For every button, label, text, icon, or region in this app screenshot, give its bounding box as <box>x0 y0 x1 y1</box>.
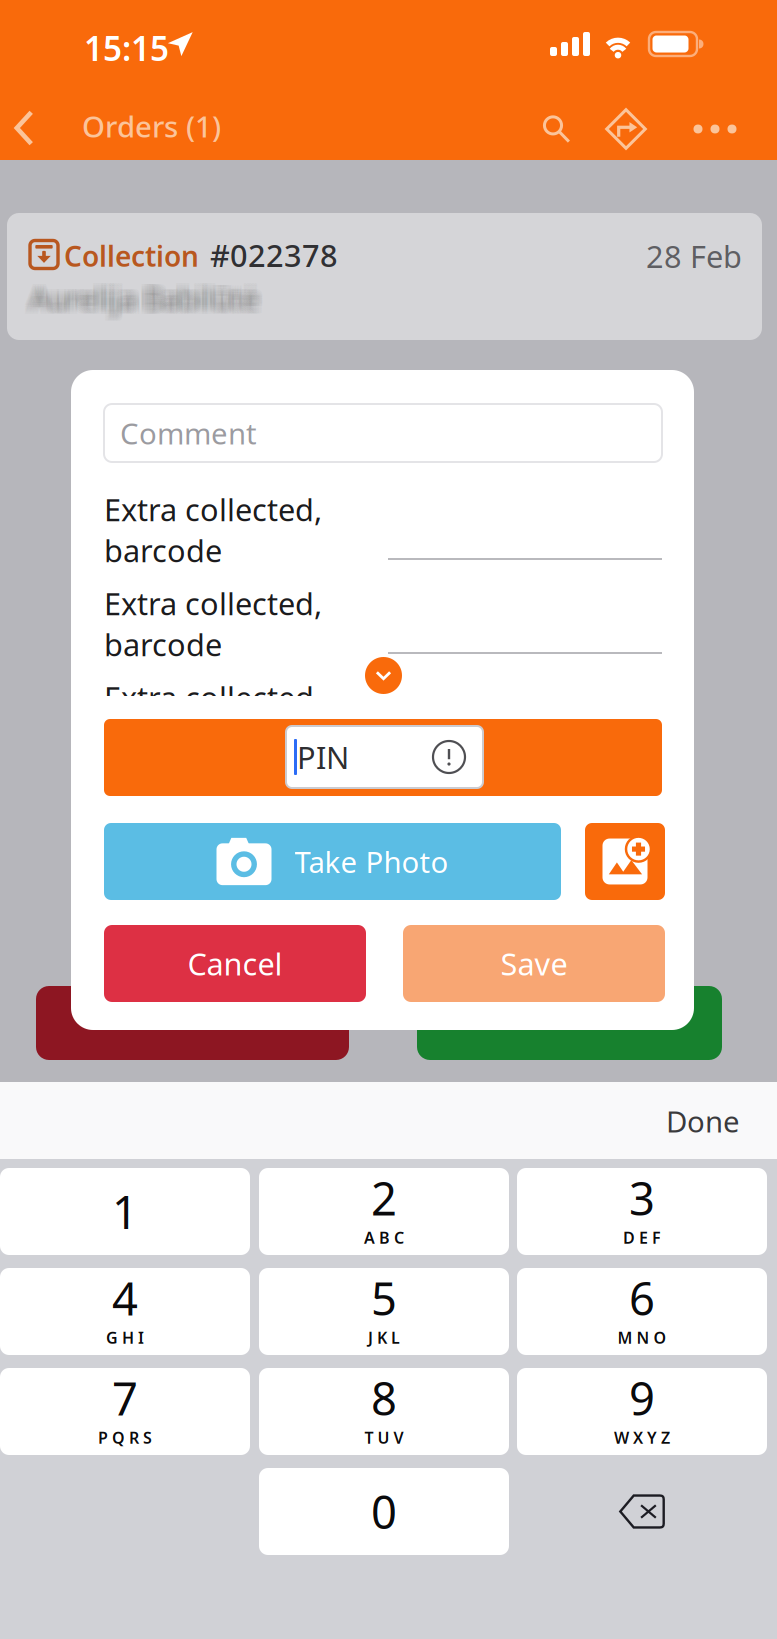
staticText: G H I <box>106 1327 144 1348</box>
staticText: Aurelija Babilūtė <box>30 278 259 317</box>
button[interactable]: More options <box>684 100 746 158</box>
staticText: M N O <box>617 1327 666 1348</box>
staticText: 4 <box>112 1268 138 1328</box>
staticText: Take Photo <box>294 842 448 881</box>
button[interactable]: Take Photo <box>104 823 561 900</box>
button[interactable]: Add photo from library <box>585 823 665 900</box>
staticText: Aurelija Babilūtė <box>35 281 264 320</box>
staticText: Aurelija Babilūtė <box>30 274 259 313</box>
button[interactable]: Cancel <box>104 925 366 1002</box>
staticText: Aurelija Babilūtė <box>27 274 256 313</box>
button[interactable]: Search <box>528 100 584 158</box>
staticText: Aurelija Babilūtė <box>25 278 254 317</box>
staticText: Extra collected, <box>104 489 322 530</box>
staticText: 9 <box>629 1368 655 1428</box>
staticText: Aurelija Babilūtė <box>25 274 254 313</box>
staticText: Aurelija Babilūtė <box>35 278 264 317</box>
staticText: Comment <box>120 413 257 452</box>
staticText: PIN <box>297 737 349 777</box>
staticText: barcode <box>104 624 222 665</box>
staticText: Aurelija Babilūtė <box>35 283 264 322</box>
staticText: 8 <box>371 1368 397 1428</box>
staticText: Aurelija Babilūtė <box>27 276 256 315</box>
staticText: Aurelija Babilūtė <box>33 274 262 313</box>
staticText: Aurelija Babilūtė <box>25 281 254 320</box>
staticText: J K L <box>368 1327 400 1348</box>
staticText: Aurelija Babilūtė <box>25 276 254 315</box>
staticText: Aurelija Babilūtė <box>27 283 256 322</box>
staticText: Aurelija Babilūtė <box>33 281 262 320</box>
staticText: 3 <box>629 1168 655 1228</box>
staticText: Aurelija Babilūtė <box>33 283 262 322</box>
button[interactable]: 4 <box>0 1268 250 1355</box>
button[interactable]: 7 <box>0 1368 250 1455</box>
staticText: Cancel <box>187 943 282 984</box>
staticText: Aurelija Babilūtė <box>30 276 259 315</box>
button[interactable]: 9 <box>517 1368 767 1455</box>
button[interactable]: 2 <box>259 1168 509 1255</box>
staticText: Aurelija Babilūtė <box>35 276 264 315</box>
staticText: Aurelija Babilūtė <box>35 274 264 313</box>
staticText: #022378 <box>210 235 338 275</box>
staticText: W X Y Z <box>614 1427 670 1448</box>
staticText: T U V <box>364 1427 403 1448</box>
staticText: P Q R S <box>98 1427 152 1448</box>
staticText: Aurelija Babilūtė <box>33 278 262 317</box>
staticText: Extra collected, <box>104 583 322 624</box>
staticText: Aurelija Babilūtė <box>27 278 256 317</box>
staticText: 7 <box>112 1368 138 1428</box>
staticText: 6 <box>629 1268 655 1328</box>
staticText: A B C <box>364 1227 404 1248</box>
button[interactable]: Navigate <box>597 100 655 158</box>
staticText: 15:15 <box>84 26 169 70</box>
staticText: Aurelija Babilūtė <box>25 283 254 322</box>
staticText: 0 <box>371 1481 397 1542</box>
staticText: 2 <box>371 1168 397 1228</box>
button[interactable]: 8 <box>259 1368 509 1455</box>
staticText: Aurelija Babilūtė <box>30 281 259 320</box>
button[interactable]: 5 <box>259 1268 509 1355</box>
staticText: Save <box>500 943 567 984</box>
button[interactable]: Back <box>0 100 48 156</box>
staticText: Collection <box>64 237 199 275</box>
button[interactable]: 1 <box>0 1168 250 1255</box>
staticText: Done <box>666 1101 740 1140</box>
button[interactable]: Save <box>403 925 665 1002</box>
button[interactable]: Delete <box>517 1468 767 1555</box>
staticText: Orders (1) <box>82 106 221 145</box>
button[interactable]: 3 <box>517 1168 767 1255</box>
button[interactable]: 0 <box>259 1468 509 1555</box>
staticText: Aurelija Babilūtė <box>27 281 256 320</box>
staticText: 5 <box>371 1268 397 1328</box>
staticText: 1 <box>112 1181 138 1242</box>
button[interactable]: Done <box>644 1085 776 1156</box>
staticText: 28 Feb <box>646 236 742 276</box>
staticText: D E F <box>623 1227 661 1248</box>
button[interactable]: 6 <box>517 1268 767 1355</box>
staticText: barcode <box>104 530 222 571</box>
staticText: Aurelija Babilūtė <box>33 276 262 315</box>
staticText: Aurelija Babilūtė <box>30 283 259 322</box>
staticText: Extra collected, <box>104 677 322 718</box>
